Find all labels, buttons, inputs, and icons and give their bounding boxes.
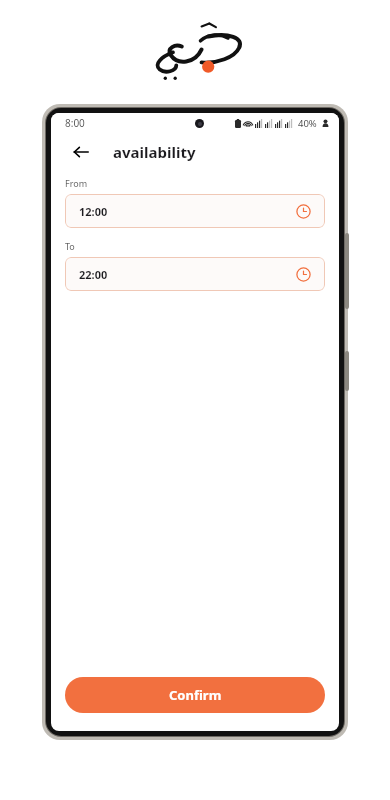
other: Pick time: [296, 204, 311, 219]
staticText: 8:00: [65, 116, 85, 130]
button[interactable]: 22:00: [65, 257, 325, 291]
staticText: From: [65, 177, 88, 189]
button[interactable]: 12:00: [65, 194, 325, 228]
button[interactable]: Back: [65, 136, 97, 168]
staticText: To: [65, 240, 75, 252]
other: Pick time: [296, 267, 311, 282]
staticText: Confirm: [169, 686, 222, 704]
staticText: availability: [113, 142, 196, 162]
staticText: 22:00: [79, 267, 108, 282]
button[interactable]: Confirm: [65, 677, 325, 713]
staticText: 12:00: [79, 204, 108, 219]
staticText: 40%: [298, 117, 317, 130]
